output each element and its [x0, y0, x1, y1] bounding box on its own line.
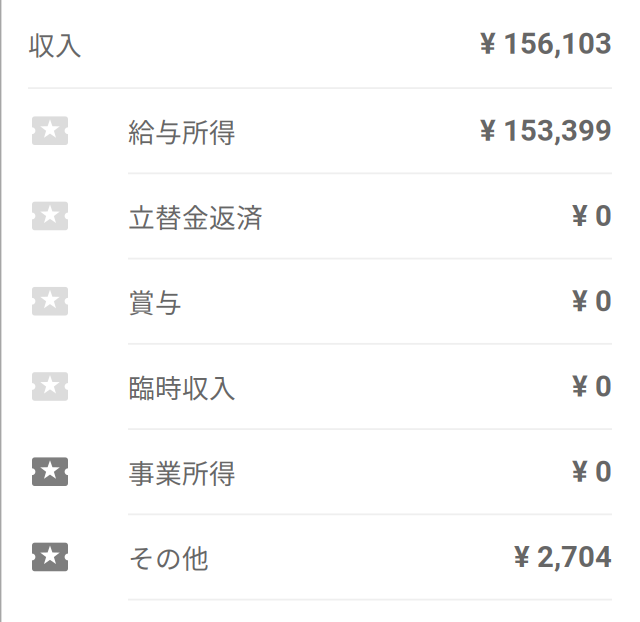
button[interactable]: その他 — [0, 515, 640, 600]
button[interactable]: 事業所得 — [0, 430, 640, 515]
staticText: 賞与 — [128, 282, 182, 320]
staticText: ¥ 2,704 — [514, 540, 612, 574]
button[interactable]: 収入 — [0, 0, 640, 89]
button[interactable]: 給与所得 — [0, 89, 640, 174]
staticText: ¥ 0 — [572, 369, 612, 404]
staticText: ¥ 0 — [572, 454, 612, 489]
staticText: 収入 — [28, 24, 82, 63]
staticText: ¥ 0 — [572, 284, 612, 318]
staticText: 立替金返済 — [128, 197, 263, 235]
staticText: その他 — [128, 538, 209, 576]
button[interactable]: 立替金返済 — [0, 174, 640, 259]
staticText: 給与所得 — [128, 111, 236, 150]
button[interactable]: 賞与 — [0, 259, 640, 345]
staticText: ¥ 156,103 — [480, 26, 612, 61]
staticText: ¥ 153,399 — [480, 113, 612, 148]
staticText: 事業所得 — [128, 452, 236, 491]
staticText: 臨時収入 — [128, 367, 236, 406]
button[interactable]: 臨時収入 — [0, 345, 640, 430]
staticText: ¥ 0 — [572, 199, 612, 233]
